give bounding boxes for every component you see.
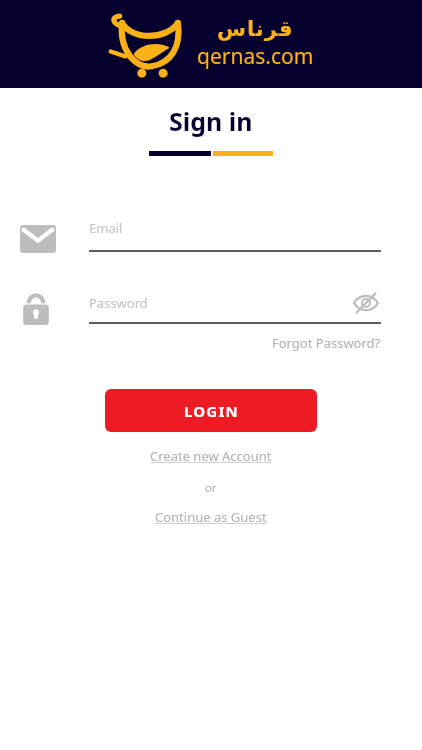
staticText: Password — [89, 294, 351, 312]
staticText: قرناس — [217, 17, 294, 41]
staticText: Create new Account — [150, 447, 272, 465]
button[interactable]: Email — [20, 219, 381, 253]
button[interactable]: Continue as Guest — [155, 508, 267, 526]
staticText: Email — [89, 219, 123, 237]
staticText: qernas.com — [197, 42, 314, 71]
button[interactable]: Password — [20, 288, 381, 325]
staticText: Forgot Password? — [272, 334, 381, 352]
staticText: LOGIN — [184, 401, 239, 421]
staticText: Sign in — [169, 104, 253, 138]
other: qernas logo — [109, 13, 191, 75]
staticText: or — [205, 480, 217, 495]
button[interactable]: Forgot Password? — [272, 334, 381, 352]
staticText: Continue as Guest — [155, 508, 267, 526]
button[interactable]: LOGIN — [105, 389, 317, 432]
button[interactable]: Create new Account — [150, 447, 272, 465]
button[interactable]: Show password — [351, 288, 381, 318]
